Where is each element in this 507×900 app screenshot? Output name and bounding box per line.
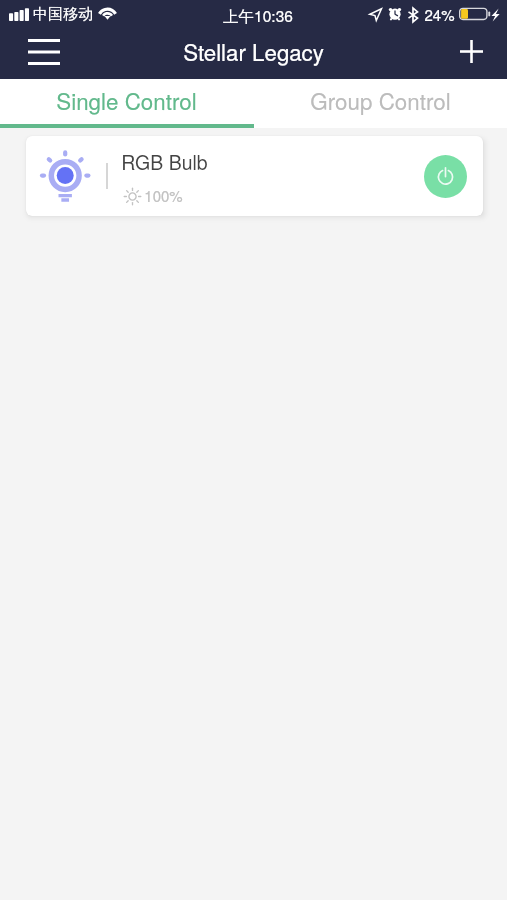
staticText: Group Control — [310, 84, 451, 116]
button[interactable]: Open navigation menu — [12, 29, 75, 79]
staticText: 100% — [144, 185, 183, 206]
button[interactable]: Group Control — [253, 79, 507, 128]
staticText: 上午10:36 — [223, 4, 293, 26]
staticText: RGB Bulb — [121, 148, 208, 176]
button[interactable]: Add device — [449, 29, 507, 79]
staticText: Single Control — [56, 84, 197, 116]
button[interactable]: Single Control — [0, 79, 253, 128]
button[interactable]: Toggle power — [424, 155, 467, 198]
staticText: 中国移动 — [33, 5, 93, 24]
staticText: Stellar Legacy — [183, 35, 324, 67]
staticText: 24% — [424, 4, 455, 25]
button[interactable]: RGB Bulb — [26, 136, 483, 216]
